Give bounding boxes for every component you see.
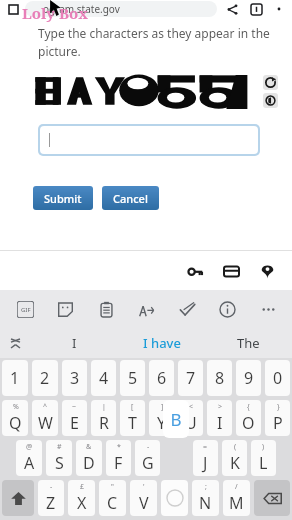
button[interactable]: Refresh captcha (263, 75, 278, 90)
button[interactable]: More (252, 293, 284, 325)
button[interactable]: ) (251, 440, 276, 476)
button[interactable]: Payment methods (216, 256, 246, 286)
staticText: Z (46, 492, 56, 514)
staticText: 8 (215, 367, 225, 389)
button[interactable]: / (223, 480, 250, 516)
button[interactable]: Cancel (102, 186, 159, 210)
button[interactable]: 9 (236, 360, 261, 396)
button[interactable]: ~ (62, 400, 87, 436)
button[interactable]: 6 (149, 360, 174, 396)
button[interactable]: Info (211, 293, 243, 325)
button[interactable]: } (265, 400, 290, 436)
button[interactable]: ^ (32, 400, 58, 436)
button[interactable]: 7 (178, 360, 203, 396)
staticText: X (77, 492, 87, 514)
staticText: GIF (21, 306, 31, 314)
button[interactable]: Tabs (5, 1, 21, 17)
button[interactable]: ogram.state.gov (25, 1, 217, 17)
button[interactable]: Share (223, 0, 241, 18)
button[interactable]: - (135, 440, 160, 476)
staticText: Q (9, 412, 22, 434)
staticText: Type the characters as they appear in th… (38, 25, 280, 60)
button[interactable]: @ (16, 440, 42, 476)
button[interactable]: The (205, 328, 292, 358)
staticText: > (218, 402, 223, 412)
staticText: ] (161, 402, 164, 412)
button[interactable]: ] (149, 400, 174, 436)
button[interactable]: * (106, 440, 131, 476)
button[interactable]: Download (247, 0, 265, 18)
button[interactable]: { (236, 400, 261, 436)
button[interactable]: [ (120, 400, 145, 436)
staticText: M (229, 492, 244, 514)
staticText: G (142, 452, 154, 474)
button[interactable]: Backspace (254, 480, 290, 516)
staticText: R (99, 412, 109, 434)
button[interactable]: - (38, 480, 64, 516)
staticText: ) (262, 442, 265, 452)
button[interactable]: GIF (9, 293, 41, 325)
staticText: [ (131, 402, 134, 412)
button[interactable]: ; (192, 480, 219, 516)
staticText: O (242, 412, 255, 434)
button[interactable]: ' (130, 480, 157, 516)
button[interactable]: Spell check (171, 293, 203, 325)
button[interactable]: Clipboard (90, 293, 122, 325)
button[interactable]: & (76, 440, 102, 476)
staticText: C (107, 492, 118, 514)
staticText: K (230, 452, 240, 474)
staticText: ' (143, 482, 145, 492)
staticText: } (277, 402, 280, 412)
staticText: B (170, 408, 182, 431)
button[interactable]: % (2, 400, 28, 436)
staticText: ( (234, 442, 237, 452)
staticText: I (217, 412, 223, 434)
button[interactable] (40, 126, 258, 154)
staticText: 2 (40, 367, 50, 389)
staticText: Y (157, 412, 167, 434)
button[interactable]: > (207, 400, 232, 436)
button[interactable]: < (178, 400, 203, 436)
button[interactable]: 3 (62, 360, 87, 396)
staticText: " (111, 482, 114, 492)
button[interactable]: " (99, 480, 126, 516)
button[interactable]: ( (222, 440, 247, 476)
staticText: D (83, 452, 95, 474)
staticText: 3 (70, 367, 80, 389)
staticText: N (199, 492, 212, 514)
staticText: & (86, 442, 92, 452)
staticText: ^ (43, 402, 48, 412)
button[interactable]: 2 (32, 360, 58, 396)
button[interactable]: 4 (91, 360, 116, 396)
staticText: Loly Box (22, 3, 88, 23)
button[interactable]: More options (271, 1, 287, 17)
button[interactable]: 8 (207, 360, 232, 396)
staticText: V (139, 492, 149, 514)
staticText: # (57, 442, 62, 452)
button[interactable]: £ (68, 480, 95, 516)
button[interactable]: Shift (2, 480, 34, 516)
button[interactable]: Expand suggestions (0, 328, 30, 358)
button[interactable]: # (46, 440, 72, 476)
staticText: 7 (186, 367, 196, 389)
staticText: 4 (99, 367, 109, 389)
button[interactable]: 5 (120, 360, 145, 396)
button[interactable]: Addresses (252, 256, 282, 286)
staticText: 0 (273, 367, 283, 389)
button[interactable]: I have (118, 328, 205, 358)
staticText: { (247, 402, 250, 412)
button[interactable]: B (161, 480, 188, 516)
button[interactable]: 0 (265, 360, 290, 396)
button[interactable]: Play audio captcha (263, 93, 278, 108)
button[interactable]: Translate (130, 293, 162, 325)
button[interactable]: | (91, 400, 116, 436)
button[interactable]: 1 (2, 360, 28, 396)
staticText: W (38, 412, 53, 434)
button[interactable]: Passwords (180, 256, 210, 286)
button[interactable]: Stickers (49, 293, 81, 325)
button[interactable]: = (193, 440, 218, 476)
button[interactable]: Submit (33, 186, 93, 210)
staticText: £ (80, 482, 85, 492)
button[interactable]: I (30, 328, 118, 358)
staticText: = (203, 442, 208, 452)
